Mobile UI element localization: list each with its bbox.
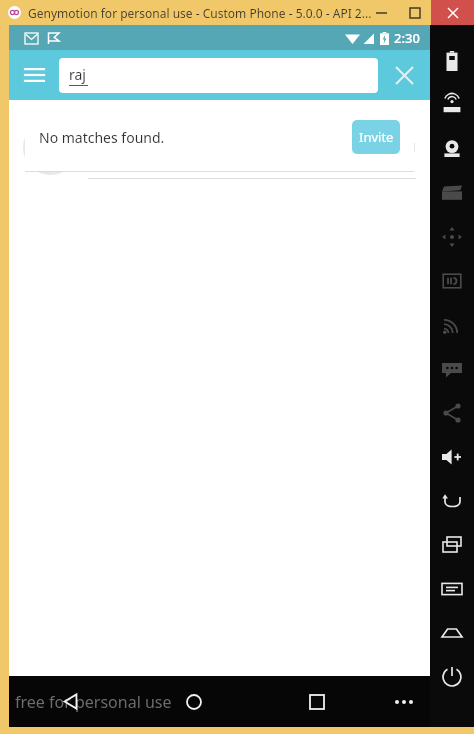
- button[interactable]: Open navigation menu: [9, 50, 59, 100]
- button[interactable]: Messaging: [430, 347, 474, 391]
- button[interactable]: Video recorder: [430, 171, 474, 215]
- staticText: Anbu Anbu: [88, 125, 172, 147]
- button[interactable]: More options: [378, 676, 430, 727]
- button[interactable]: Camera: [430, 127, 474, 171]
- button[interactable]: Home: [132, 676, 255, 727]
- button[interactable]: Identifiers: [430, 259, 474, 303]
- button[interactable]: Power: [430, 655, 474, 699]
- staticText: Invite: [359, 128, 394, 146]
- button[interactable]: Menu: [430, 567, 474, 611]
- button[interactable]: Invite: [352, 120, 400, 154]
- button[interactable]: Volume: [430, 435, 474, 479]
- button[interactable]: Close: [431, 0, 474, 25]
- staticText: raj: [69, 65, 86, 84]
- button[interactable]: Network: [430, 303, 474, 347]
- staticText: Genymotion for personal use - Custom Pho…: [28, 5, 372, 21]
- staticText: free for personal use: [15, 691, 172, 713]
- button[interactable]: Home: [430, 611, 474, 655]
- button[interactable]: raj: [59, 58, 378, 93]
- button[interactable]: Maximize: [398, 0, 431, 25]
- button[interactable]: Back: [430, 479, 474, 523]
- button[interactable]: Recents: [430, 523, 474, 567]
- staticText: 02:07 AM: [363, 139, 416, 155]
- button[interactable]: No matches found.: [25, 102, 414, 172]
- button[interactable]: Battery: [430, 39, 474, 83]
- button[interactable]: Back: [9, 676, 132, 727]
- button[interactable]: Recent apps: [255, 676, 378, 727]
- button[interactable]: Clear search: [378, 50, 430, 100]
- staticText: No matches found.: [39, 128, 352, 147]
- button[interactable]: GPS: [430, 83, 474, 127]
- button[interactable]: Minimize: [365, 0, 398, 25]
- staticText: 2:30: [394, 29, 420, 47]
- button[interactable]: Share: [430, 391, 474, 435]
- button[interactable]: Anbu Anbu: [9, 116, 430, 178]
- button[interactable]: Accelerometer: [430, 215, 474, 259]
